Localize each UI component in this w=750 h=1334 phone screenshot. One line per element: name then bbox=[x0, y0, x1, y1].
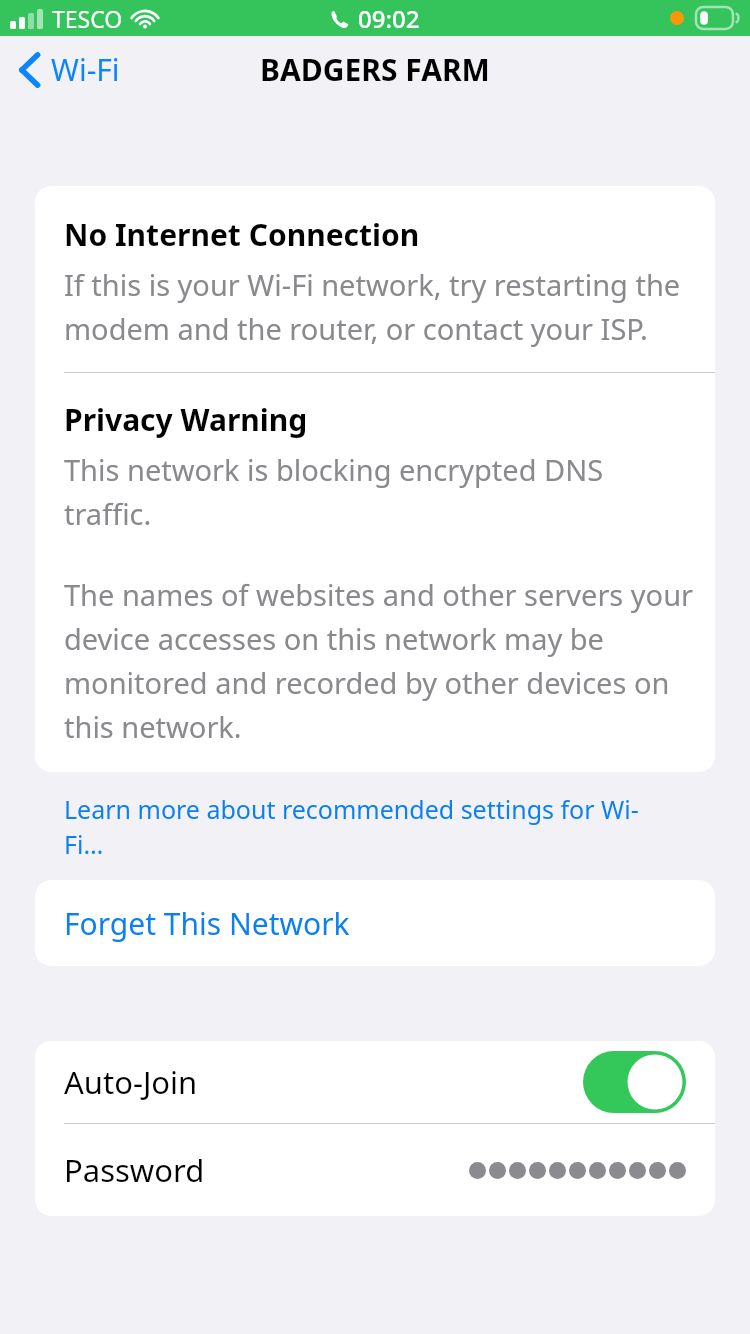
staticText: If this is your Wi-Fi network, try resta… bbox=[64, 265, 695, 348]
staticText: Wi-Fi bbox=[51, 49, 120, 90]
staticText: Privacy Warning bbox=[64, 399, 308, 440]
staticText: BADGERS FARM bbox=[260, 49, 490, 90]
staticText: This network is blocking encrypted DNS t… bbox=[64, 450, 645, 533]
staticText: No Internet Connection bbox=[64, 214, 420, 255]
staticText: Password bbox=[64, 1149, 205, 1191]
button[interactable]: Password bbox=[35, 1124, 715, 1216]
staticText: Auto-Join bbox=[64, 1061, 198, 1103]
staticText: TESCO bbox=[52, 3, 123, 34]
staticText: The names of websites and other servers … bbox=[64, 575, 703, 746]
staticText: Forget This Network bbox=[64, 903, 350, 944]
staticText: Learn more about recommended settings fo… bbox=[64, 792, 655, 862]
button[interactable]: Auto-Join bbox=[35, 1041, 715, 1123]
button[interactable]: Auto-Join toggle, on bbox=[583, 1051, 686, 1113]
staticText: 09:02 bbox=[358, 2, 420, 35]
button[interactable]: Wi-Fi bbox=[12, 45, 126, 94]
button[interactable]: Learn more about recommended settings fo… bbox=[35, 792, 715, 862]
button[interactable]: Forget This Network bbox=[35, 880, 715, 966]
